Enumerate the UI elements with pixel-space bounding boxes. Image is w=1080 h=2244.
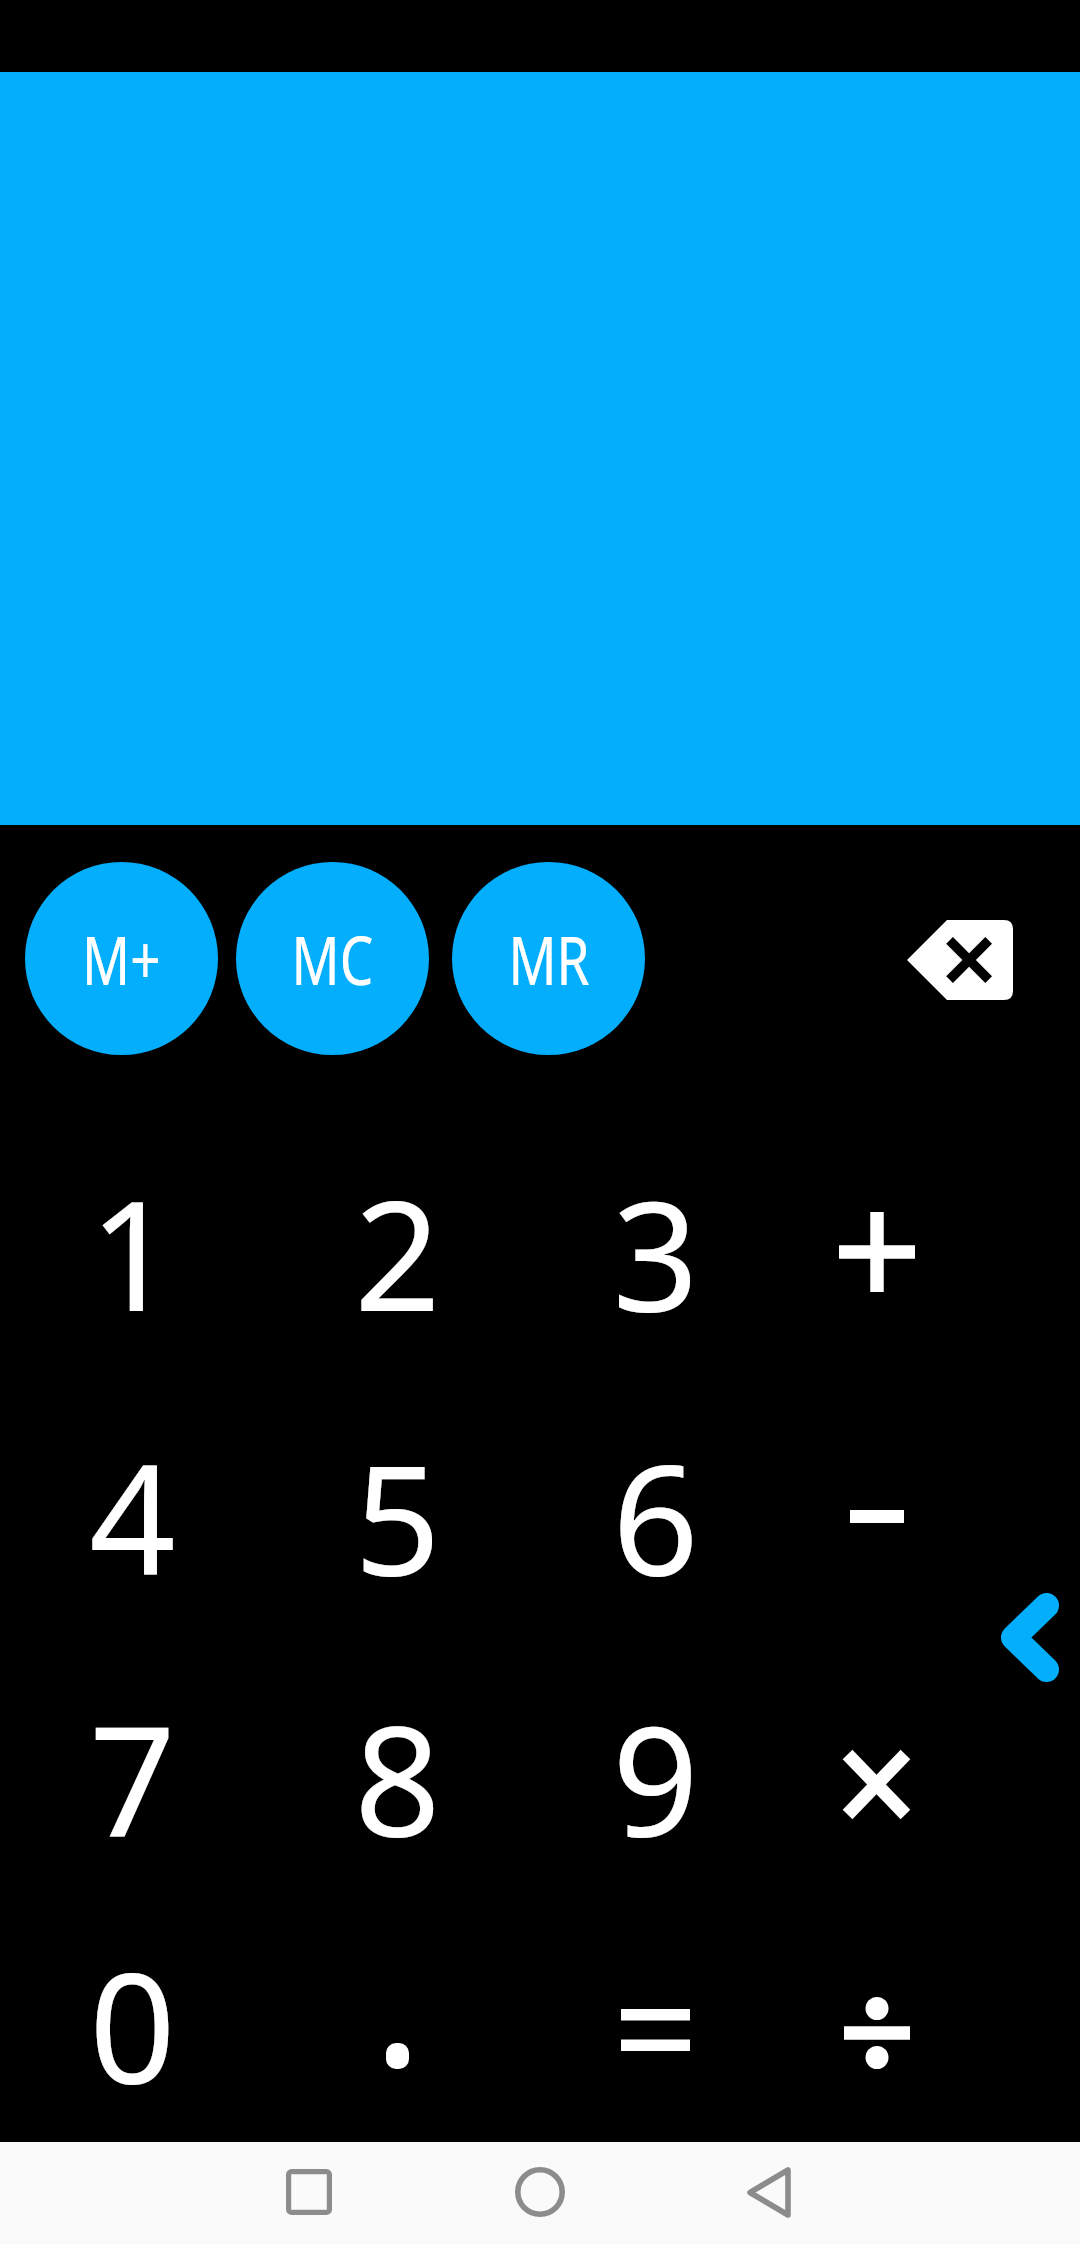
button[interactable]: Recents bbox=[259, 2142, 359, 2242]
button[interactable]: 9 bbox=[526, 1647, 765, 1901]
button[interactable]: 3 bbox=[526, 1122, 765, 1384]
button[interactable]: 1 bbox=[0, 1122, 264, 1384]
button[interactable]: 6 bbox=[526, 1384, 765, 1647]
button[interactable]: Plus bbox=[765, 1122, 1080, 1384]
button[interactable]: Decimal point bbox=[264, 1901, 526, 2142]
staticText: 9 bbox=[612, 1675, 699, 1881]
staticText: 0 bbox=[89, 1922, 176, 2128]
staticText: 8 bbox=[354, 1675, 441, 1881]
staticText: 7 bbox=[89, 1675, 176, 1881]
button[interactable]: 2 bbox=[264, 1122, 526, 1384]
staticText: 4 bbox=[89, 1414, 176, 1620]
button[interactable]: Equals bbox=[526, 1901, 765, 2142]
button[interactable]: Home bbox=[490, 2142, 590, 2242]
staticText: M+ bbox=[82, 912, 161, 1005]
button[interactable]: 4 bbox=[0, 1384, 264, 1647]
staticText: 3 bbox=[612, 1150, 699, 1356]
button[interactable]: Minus bbox=[765, 1384, 1080, 1647]
staticText: 1 bbox=[89, 1150, 176, 1356]
button[interactable]: Divide bbox=[765, 1901, 1080, 2142]
button[interactable]: M+ bbox=[25, 862, 218, 1055]
staticText: 5 bbox=[354, 1414, 441, 1620]
staticText: MC bbox=[291, 912, 373, 1005]
button[interactable]: 8 bbox=[264, 1647, 526, 1901]
button[interactable]: 7 bbox=[0, 1647, 264, 1901]
button[interactable]: MR bbox=[452, 862, 645, 1055]
button[interactable]: Previous page bbox=[972, 1571, 1080, 1703]
button[interactable]: MC bbox=[236, 862, 429, 1055]
staticText: 2 bbox=[354, 1150, 441, 1356]
staticText: MR bbox=[508, 912, 589, 1005]
button[interactable]: Backspace bbox=[890, 880, 1030, 1040]
button[interactable]: 5 bbox=[264, 1384, 526, 1647]
staticText: 6 bbox=[612, 1414, 699, 1620]
button[interactable]: Back bbox=[719, 2142, 819, 2242]
button[interactable]: 0 bbox=[0, 1901, 264, 2142]
button[interactable]: Multiply bbox=[765, 1647, 1080, 1901]
